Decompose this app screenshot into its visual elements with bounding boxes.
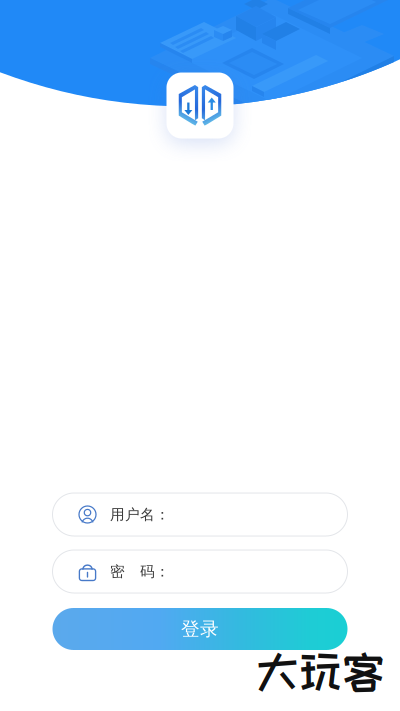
button[interactable]: 登录 <box>52 608 347 650</box>
staticText: 登录 <box>181 617 219 640</box>
staticText: 密 码： <box>110 562 170 580</box>
staticText: 大玩客 <box>256 648 385 695</box>
staticText: 用户名： <box>110 505 170 523</box>
